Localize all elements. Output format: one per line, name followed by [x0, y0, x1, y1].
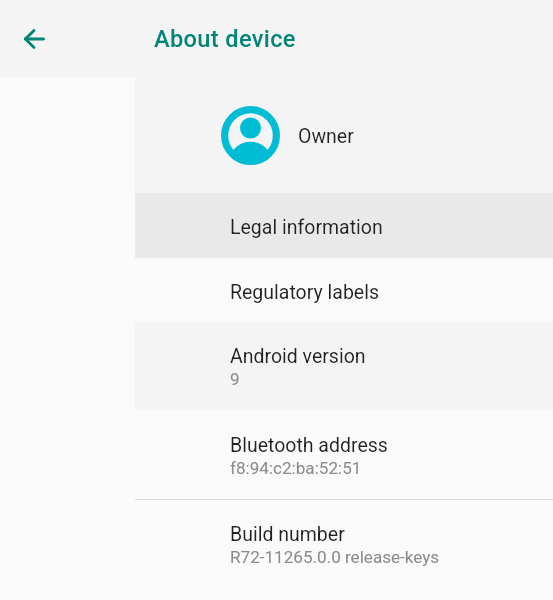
staticText: 9	[230, 369, 240, 389]
button[interactable]: Owner	[135, 77, 553, 193]
staticText: Build number	[230, 523, 345, 546]
button[interactable]: Android version	[135, 322, 553, 410]
button[interactable]: Regulatory labels	[135, 258, 553, 322]
staticText: Regulatory labels	[230, 281, 380, 304]
button[interactable]: Navigate up	[10, 15, 58, 63]
button[interactable]: Build number	[135, 499, 553, 588]
staticText: f8:94:c2:ba:52:51	[230, 458, 362, 478]
staticText: Legal information	[230, 216, 383, 239]
button[interactable]: Legal information	[135, 193, 553, 258]
staticText: Owner	[298, 125, 354, 148]
button[interactable]: Bluetooth address	[135, 410, 553, 499]
staticText: About device	[154, 25, 296, 53]
staticText: Android version	[230, 345, 366, 368]
staticText: R72-11265.0.0 release-keys	[230, 547, 440, 567]
staticText: Bluetooth address	[230, 434, 388, 457]
